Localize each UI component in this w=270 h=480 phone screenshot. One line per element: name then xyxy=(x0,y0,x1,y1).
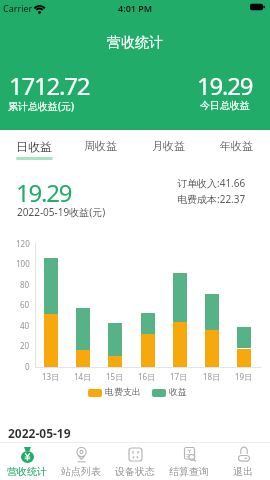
staticText: 40 xyxy=(20,320,30,331)
staticText: 累计总收益(元) xyxy=(8,99,74,113)
button[interactable]: 月收益 xyxy=(134,130,202,162)
button[interactable]: 营收统计 xyxy=(0,443,54,480)
button[interactable]: 结算查询 xyxy=(162,443,216,480)
staticText: 电费成本:22.37 xyxy=(177,192,246,206)
staticText: 19日 xyxy=(235,371,253,382)
staticText: 14日 xyxy=(74,371,92,382)
staticText: 80 xyxy=(20,279,30,290)
staticText: 16日 xyxy=(138,371,156,382)
staticText: 13日 xyxy=(42,371,60,382)
button[interactable]: 设备状态 xyxy=(108,443,162,480)
staticText: 19.29 xyxy=(197,69,253,102)
staticText: 结算查询 xyxy=(169,465,209,478)
staticText: 20 xyxy=(20,340,30,351)
staticText: 100 xyxy=(16,258,30,269)
staticText: 设备状态 xyxy=(115,465,155,478)
staticText: 15日 xyxy=(106,371,124,382)
staticText: 营收统计 xyxy=(7,465,47,478)
button[interactable]: 站点列表 xyxy=(54,443,108,480)
staticText: 退出 xyxy=(233,465,253,478)
button[interactable]: 年收益 xyxy=(202,130,270,162)
staticText: 1712.72 xyxy=(9,69,90,102)
staticText: 年收益 xyxy=(220,139,253,153)
staticText: 60 xyxy=(20,299,30,310)
button[interactable]: 周收益 xyxy=(67,130,134,162)
staticText: 17日 xyxy=(170,371,188,382)
staticText: 2022-05-19收益(元) xyxy=(17,205,106,219)
staticText: 18日 xyxy=(203,371,221,382)
staticText: 4:01 PM xyxy=(118,2,153,14)
staticText: 周收益 xyxy=(84,139,117,153)
staticText: 今日总收益 xyxy=(200,99,250,112)
staticText: 订单收入:41.66 xyxy=(177,176,246,190)
staticText: 120 xyxy=(16,238,30,249)
staticText: 19.29 xyxy=(16,176,72,209)
staticText: 电费支出 xyxy=(105,386,141,397)
staticText: Carrier xyxy=(3,2,33,14)
staticText: 月收益 xyxy=(152,139,185,153)
button[interactable]: 日收益 xyxy=(0,130,67,162)
staticText: 收益 xyxy=(169,386,187,397)
staticText: 0 xyxy=(25,361,30,372)
staticText: 营收统计 xyxy=(107,34,163,52)
staticText: 站点列表 xyxy=(61,465,101,478)
staticText: 日收益 xyxy=(16,139,52,154)
button[interactable]: 退出 xyxy=(216,443,270,480)
staticText: 2022-05-19 xyxy=(8,425,71,441)
